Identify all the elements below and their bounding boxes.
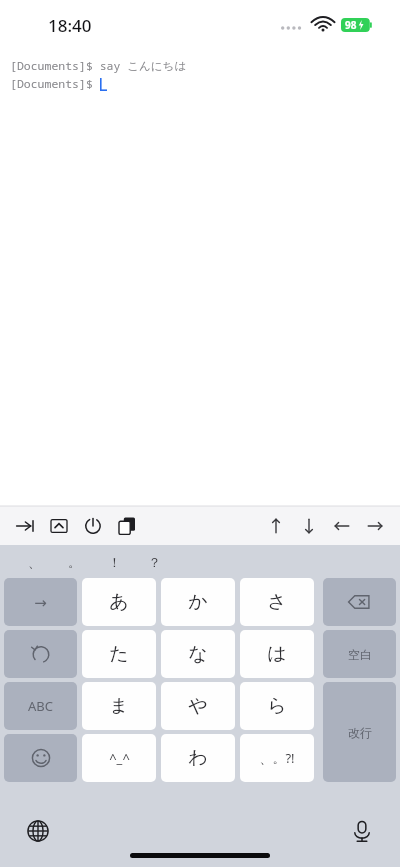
button[interactable]: か xyxy=(161,578,235,626)
staticText: ^_^ xyxy=(109,749,130,767)
button[interactable]: な xyxy=(161,630,235,678)
staticText: → xyxy=(34,594,47,611)
button[interactable]: た xyxy=(82,630,156,678)
button[interactable]: ！ xyxy=(94,547,134,577)
staticText: た xyxy=(109,642,129,666)
staticText: [Documents]$ say こんにちは xyxy=(10,58,187,74)
button[interactable]: History xyxy=(80,513,106,539)
staticText: あ xyxy=(109,590,129,614)
button[interactable]: → xyxy=(4,578,77,626)
button[interactable]: Undo xyxy=(4,630,77,678)
button[interactable]: Emoji xyxy=(4,734,77,782)
staticText: 、 xyxy=(28,554,41,570)
button[interactable]: Up xyxy=(263,513,289,539)
button[interactable]: さ xyxy=(240,578,314,626)
staticText: な xyxy=(188,642,208,666)
button[interactable]: Down xyxy=(296,513,322,539)
staticText: は xyxy=(267,642,287,666)
staticText: [Documents]$ xyxy=(10,76,100,92)
button[interactable]: Tab xyxy=(12,513,38,539)
button[interactable]: 、 xyxy=(14,547,54,577)
staticText: さ xyxy=(267,590,287,614)
staticText: 98 xyxy=(345,18,357,32)
staticText: ま xyxy=(109,694,129,718)
button[interactable]: わ xyxy=(161,734,235,782)
staticText: わ xyxy=(188,746,208,770)
button[interactable]: ま xyxy=(82,682,156,730)
button[interactable]: ABC xyxy=(4,682,77,730)
staticText: 改行 xyxy=(348,725,372,740)
staticText: 空白 xyxy=(348,647,372,662)
staticText: ら xyxy=(267,694,287,718)
button[interactable]: ？ xyxy=(134,547,174,577)
button[interactable]: Left xyxy=(329,513,355,539)
staticText: ？ xyxy=(148,554,161,570)
button[interactable]: Change keyboard xyxy=(20,813,56,849)
button[interactable]: Paste xyxy=(114,513,140,539)
button[interactable]: ^_^ xyxy=(82,734,156,782)
staticText: か xyxy=(188,590,208,614)
staticText: ！ xyxy=(108,554,121,570)
button[interactable]: Dictation xyxy=(344,813,380,849)
button[interactable]: 、。?! xyxy=(240,734,314,782)
staticText: ABC xyxy=(28,697,53,715)
staticText: 18:40 xyxy=(48,14,92,37)
button[interactable]: あ xyxy=(82,578,156,626)
button[interactable]: や xyxy=(161,682,235,730)
staticText: 。 xyxy=(68,554,81,570)
staticText: や xyxy=(188,694,208,718)
staticText: 、。?! xyxy=(259,749,295,767)
button[interactable]: 。 xyxy=(54,547,94,577)
button[interactable]: は xyxy=(240,630,314,678)
button[interactable]: Control xyxy=(46,513,72,539)
button[interactable]: 改行 xyxy=(323,682,396,782)
button[interactable]: ら xyxy=(240,682,314,730)
button[interactable]: Right xyxy=(362,513,388,539)
button[interactable]: 空白 xyxy=(323,630,396,678)
button[interactable]: Backspace xyxy=(323,578,396,626)
